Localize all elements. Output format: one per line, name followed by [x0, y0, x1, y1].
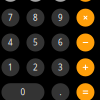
- button[interactable]: Equals: [76, 83, 94, 100]
- button[interactable]: Divide: [76, 0, 94, 2]
- button[interactable]: +/-: [26, 0, 44, 2]
- staticText: 2: [33, 62, 38, 73]
- button[interactable]: .: [51, 83, 69, 100]
- staticText: 8: [33, 12, 38, 23]
- button[interactable]: 0: [1, 83, 44, 100]
- staticText: 5: [33, 37, 38, 48]
- button[interactable]: 1: [1, 58, 19, 76]
- staticText: 3: [58, 62, 63, 73]
- button[interactable]: AC: [1, 0, 19, 2]
- button[interactable]: 6: [51, 33, 69, 51]
- staticText: 1: [8, 62, 13, 73]
- button[interactable]: %: [51, 0, 69, 2]
- staticText: .: [59, 87, 61, 97]
- button[interactable]: 8: [26, 9, 44, 27]
- button[interactable]: 9: [51, 9, 69, 27]
- staticText: 7: [8, 12, 13, 23]
- button[interactable]: 7: [1, 9, 19, 27]
- button[interactable]: 3: [51, 58, 69, 76]
- button[interactable]: 4: [1, 33, 19, 51]
- button[interactable]: Minus: [76, 33, 94, 51]
- staticText: 9: [58, 12, 63, 23]
- button[interactable]: 5: [26, 33, 44, 51]
- button[interactable]: 2: [26, 58, 44, 76]
- staticText: 0: [20, 87, 25, 97]
- button[interactable]: Plus: [76, 58, 94, 76]
- staticText: 4: [8, 37, 13, 48]
- staticText: 6: [58, 37, 63, 48]
- button[interactable]: Multiply: [76, 9, 94, 27]
